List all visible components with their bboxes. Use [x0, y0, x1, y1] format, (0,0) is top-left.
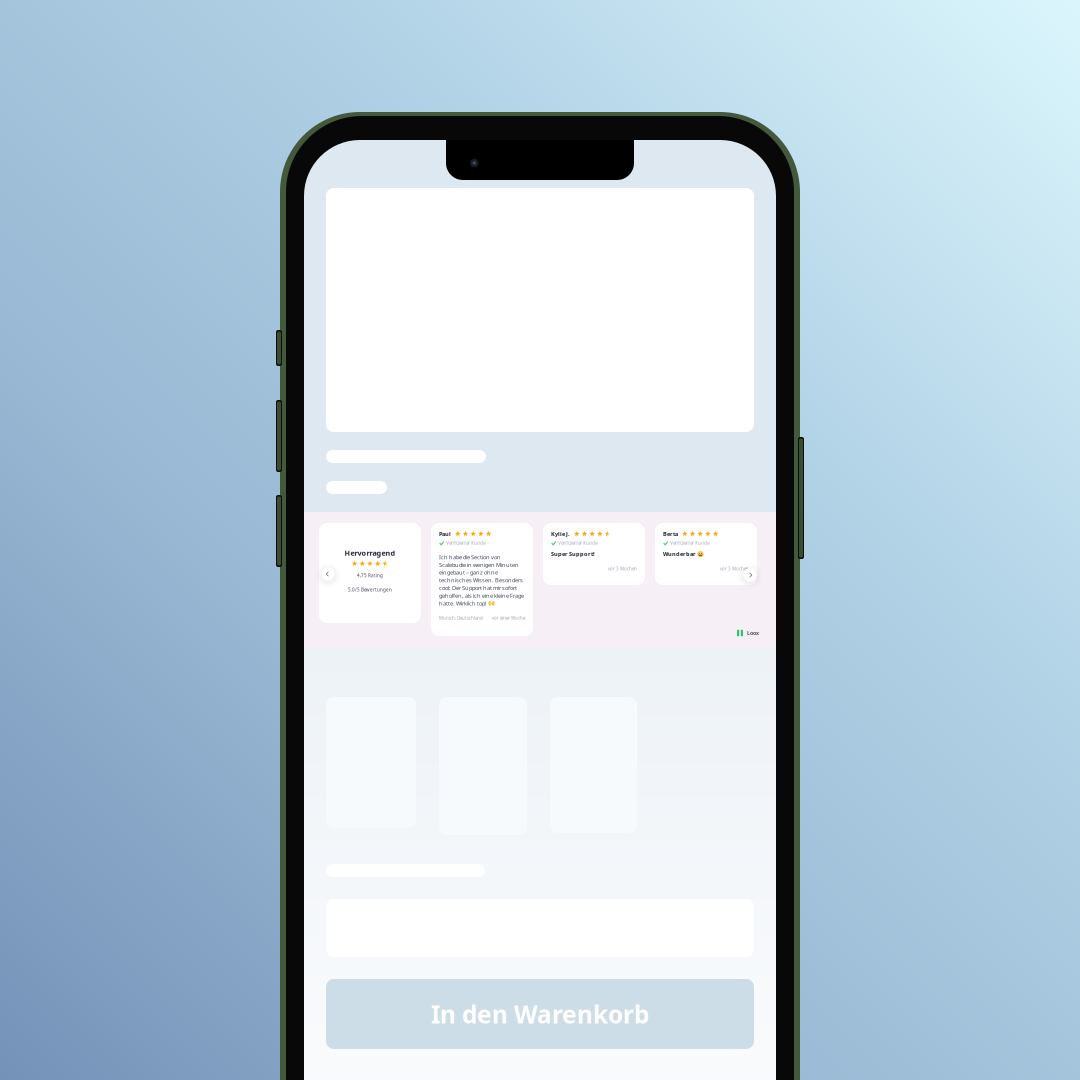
staticText: 5.0/5 Bewertungen	[348, 587, 392, 593]
staticText: Munich, Deutschland	[439, 615, 483, 621]
staticText: vor 3 Wochen	[608, 566, 637, 572]
staticText: vor 3 Wochen	[720, 566, 749, 572]
staticText: Berta	[663, 530, 678, 538]
staticText: Ich habe die Section von Scalebudie in w…	[439, 553, 524, 607]
staticText: 4,75 Rating	[357, 572, 383, 579]
staticText: Paul	[439, 530, 451, 538]
staticText: In den Warenkorb	[431, 997, 649, 1031]
staticText: Loox	[747, 629, 759, 637]
staticText: Super Support!	[551, 550, 595, 558]
staticText: Wunderbar 😄	[663, 550, 704, 558]
button[interactable]: Nächste Bewertung	[741, 566, 758, 583]
button[interactable]: Vorherige Bewertung	[319, 565, 336, 582]
staticText: vor einer Woche	[492, 615, 525, 621]
button[interactable]: In den Warenkorb	[326, 979, 754, 1049]
staticText: Verifizierter Kunde	[558, 540, 597, 546]
staticText: Hervorragend	[344, 548, 395, 558]
staticText: Verifizierter Kunde	[446, 540, 485, 546]
staticText: Kylie J.	[551, 530, 570, 538]
staticText: Verifizierter Kunde	[670, 540, 709, 546]
